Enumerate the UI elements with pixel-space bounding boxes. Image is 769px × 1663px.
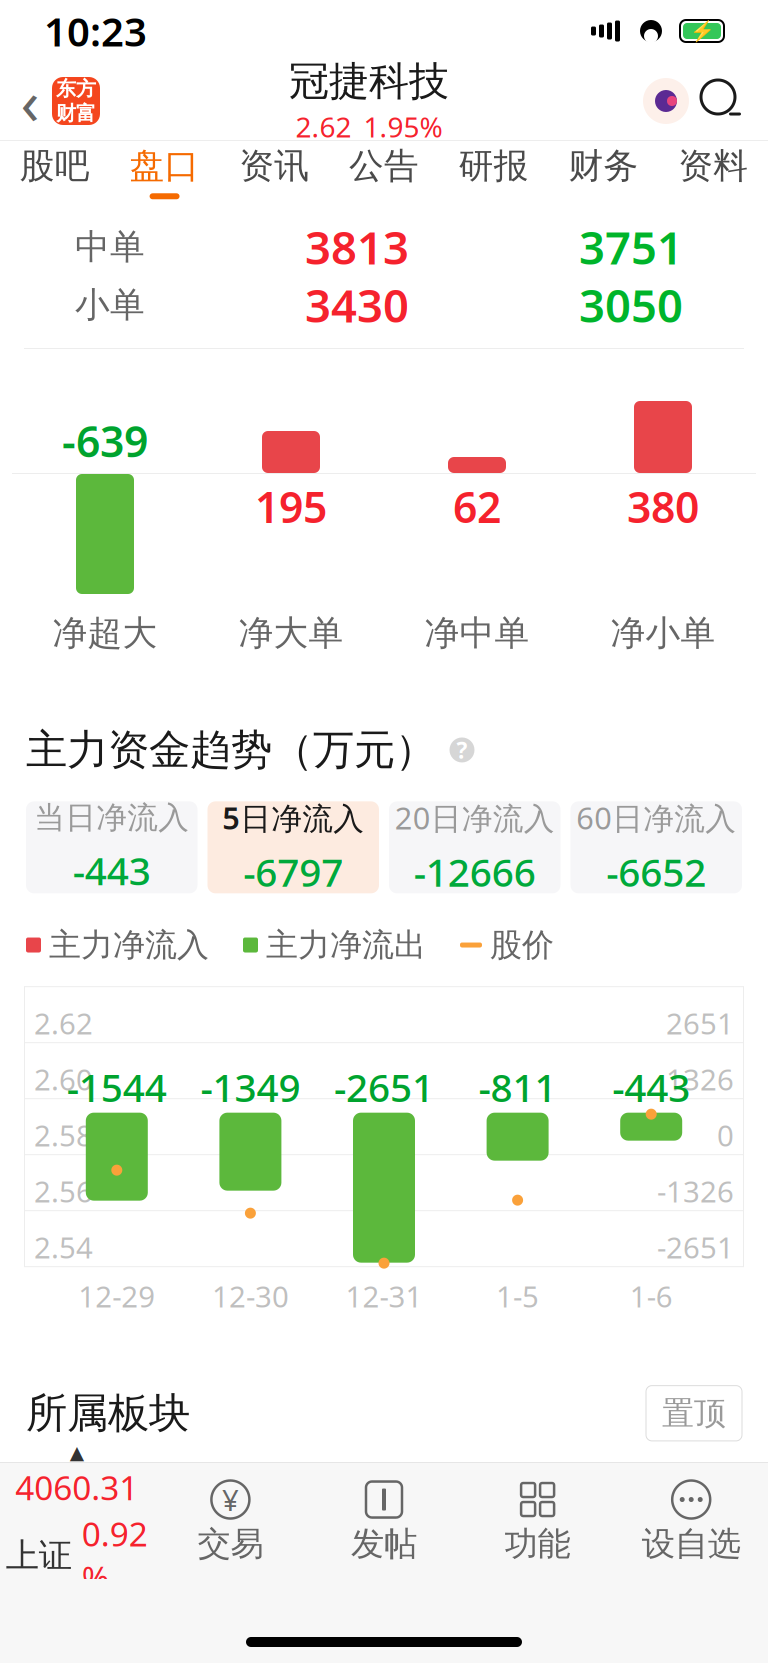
staticText: -1349 [200, 1061, 300, 1113]
staticText: ▲ [70, 1442, 84, 1463]
staticText: 功能 [505, 1523, 571, 1564]
staticText: 净小单 [610, 612, 715, 655]
staticText: 置顶 [662, 1394, 726, 1433]
staticText: 3430 [305, 275, 409, 335]
staticText: 财务 [568, 145, 638, 187]
staticText: 资料 [678, 145, 748, 187]
button[interactable]: 盘口 [110, 140, 219, 204]
staticText: -6797 [243, 846, 343, 897]
staticText: 公告 [349, 145, 419, 187]
button[interactable]: ¥ [154, 1463, 307, 1579]
staticText: 60日净流入 [576, 797, 736, 838]
staticText: 当日净流入 [34, 799, 189, 836]
staticText: ¥ [222, 1480, 239, 1519]
staticText: 主力资金趋势（万元） [26, 725, 436, 775]
staticText: 净超大 [52, 612, 157, 655]
staticText: 2651 [666, 1004, 734, 1043]
staticText: 小单 [75, 284, 145, 326]
button[interactable]: 研报 [439, 140, 549, 204]
button[interactable]: 资料 [658, 140, 768, 204]
staticText: 上证 [6, 1535, 72, 1576]
staticText: 1326 [666, 1060, 734, 1099]
staticText: 资讯 [239, 145, 309, 187]
staticText: 主力净流出 [266, 925, 426, 965]
button[interactable]: 返回 [8, 73, 52, 129]
staticText: 净大单 [238, 612, 343, 655]
staticText: 2.56 [34, 1172, 93, 1211]
button[interactable]: 搜索 [694, 73, 750, 129]
staticText: 3050 [579, 275, 683, 335]
staticText: 中单 [75, 226, 145, 268]
staticText: 195 [255, 478, 327, 535]
staticText: 0 [717, 1116, 734, 1155]
staticText: 主力净流入 [49, 925, 209, 965]
staticText: -639 [62, 412, 148, 469]
staticText: 62 [453, 478, 501, 535]
staticText: 发帖 [351, 1523, 417, 1564]
button[interactable]: 财务 [549, 140, 658, 204]
staticText: 1.95% [363, 108, 442, 145]
staticText: 10:23 [44, 4, 147, 57]
staticText: 净中单 [424, 612, 529, 655]
staticText: 0.92% [82, 1511, 148, 1600]
staticText: 12-31 [345, 1277, 422, 1316]
staticText: 12-30 [212, 1277, 289, 1316]
staticText: 2.62 [295, 108, 351, 145]
staticText: 股价 [490, 925, 554, 965]
button[interactable]: ▲ [0, 1463, 154, 1579]
button[interactable]: 智能助手 [638, 73, 694, 129]
staticText: 1-5 [496, 1277, 539, 1316]
staticText: ‹ [20, 60, 39, 142]
staticText: -1544 [67, 1061, 167, 1113]
staticText: 3751 [579, 217, 683, 277]
staticText: 4060.31 [15, 1465, 138, 1509]
button[interactable]: 60日净流入 [570, 801, 742, 893]
staticText: 盘口 [130, 145, 200, 187]
staticText: 20日净流入 [395, 797, 555, 838]
staticText: ⚡ [689, 20, 714, 42]
staticText: 2.62 [34, 1004, 93, 1043]
staticText: 冠捷科技 [289, 57, 449, 106]
staticText: 所属板块 [26, 1388, 190, 1439]
staticText: -1326 [657, 1172, 734, 1211]
button[interactable]: 5日净流入 [207, 801, 379, 893]
staticText: 5日净流入 [222, 797, 364, 838]
button[interactable]: 资讯 [219, 140, 329, 204]
button[interactable]: 公告 [329, 140, 439, 204]
button[interactable]: 东方财富 [52, 77, 100, 125]
button[interactable]: 当日净流入 [26, 801, 197, 893]
staticText: 2.60 [34, 1060, 93, 1099]
button[interactable]: 说明 [446, 734, 478, 766]
staticText: 1-6 [630, 1277, 673, 1316]
staticText: -12666 [414, 846, 536, 897]
staticText: 地域 [384, 1475, 454, 1517]
staticText: 交易 [197, 1523, 263, 1564]
staticText: 12-29 [78, 1277, 155, 1316]
button[interactable]: 置顶 [646, 1386, 742, 1441]
button[interactable]: 设自选 [614, 1463, 768, 1579]
staticText: 380 [627, 478, 699, 535]
button[interactable]: 功能 [461, 1463, 614, 1579]
staticText: 设自选 [642, 1523, 741, 1564]
staticText: -443 [612, 1061, 690, 1113]
button[interactable]: 20日净流入 [389, 801, 560, 893]
staticText: -2651 [334, 1061, 434, 1113]
staticText: 股吧 [20, 145, 90, 187]
staticText: -2651 [657, 1228, 734, 1267]
staticText: ? [456, 735, 467, 765]
staticText: 东方 [56, 76, 96, 101]
staticText: 行业 [26, 1475, 96, 1517]
staticText: 3813 [305, 217, 409, 277]
staticText: 研报 [459, 145, 529, 187]
staticText: 财富 [56, 101, 96, 126]
staticText: -6652 [606, 846, 706, 897]
staticText: 2.54 [34, 1228, 93, 1267]
staticText: 2.58 [34, 1116, 93, 1155]
button[interactable]: 股吧 [0, 140, 110, 204]
button[interactable]: 发帖 [307, 1463, 461, 1579]
staticText: -811 [479, 1061, 557, 1113]
staticText: -443 [73, 844, 151, 896]
